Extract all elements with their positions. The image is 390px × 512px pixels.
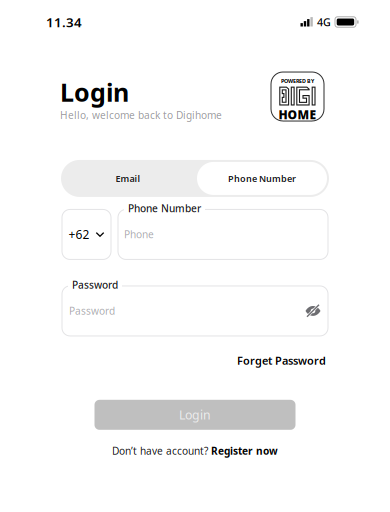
staticText: Phone (124, 227, 154, 241)
staticText: Don’t have account? (112, 444, 208, 458)
staticText: Password (69, 304, 115, 318)
staticText: 11.34 (46, 13, 82, 31)
button[interactable]: Show password (305, 303, 328, 319)
staticText: Register now (211, 444, 278, 458)
staticText: +62 (68, 226, 89, 242)
staticText: Hello, welcome back to Digihome (60, 108, 222, 122)
button[interactable]: Register now (211, 444, 278, 458)
staticText: Email (115, 172, 140, 185)
button[interactable]: Email (61, 160, 195, 197)
staticText: 4G (317, 15, 331, 29)
staticText: Password (72, 278, 118, 292)
staticText: HOME (278, 107, 316, 122)
staticText: Forget Password (237, 353, 326, 368)
staticText: POWERED BY (281, 77, 314, 85)
button[interactable]: +62 (62, 209, 111, 259)
button[interactable]: Forget Password (237, 353, 326, 368)
staticText: Login (60, 75, 129, 109)
staticText: Phone Number (228, 172, 296, 185)
staticText: Phone Number (128, 201, 201, 215)
button[interactable]: Login (94, 400, 295, 430)
staticText: Login (179, 406, 211, 423)
button[interactable]: Phone Number (195, 160, 329, 197)
